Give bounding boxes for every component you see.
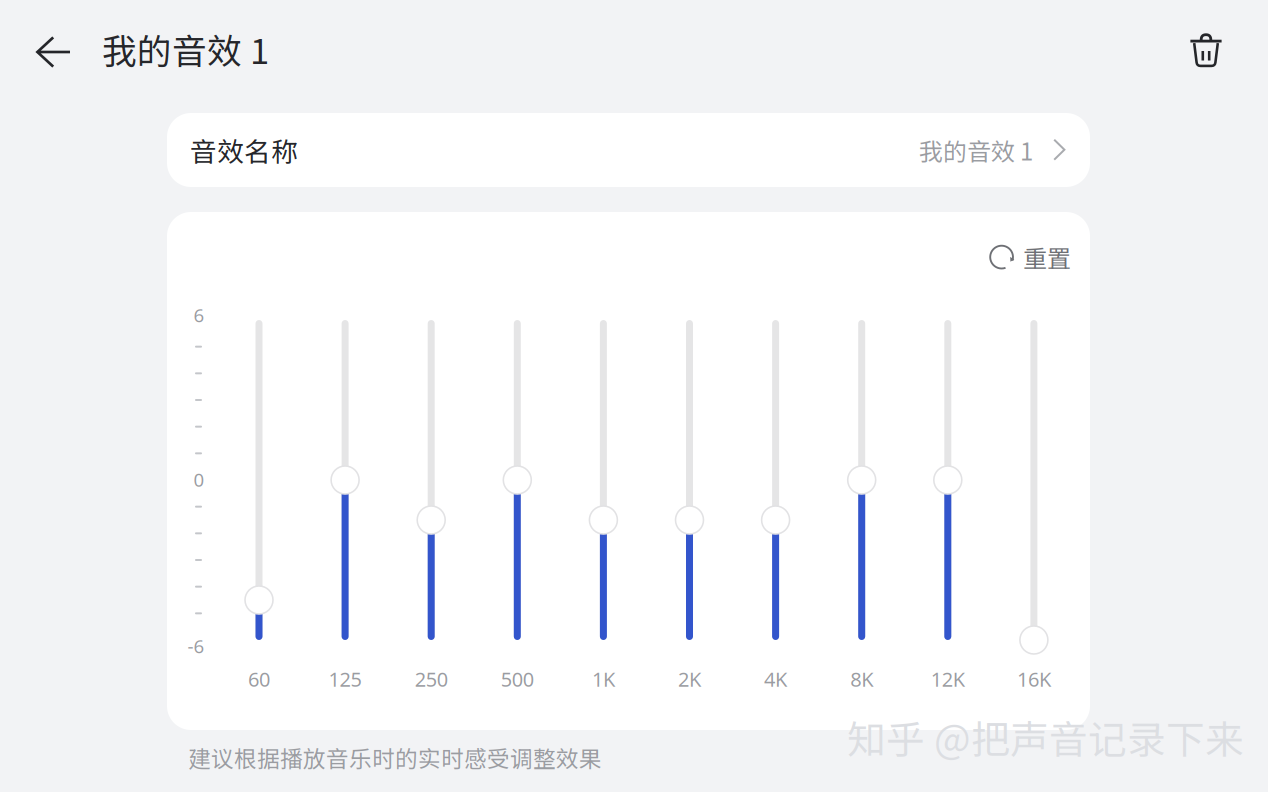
staticText: 0 [193, 467, 204, 492]
staticText: 8K [850, 666, 873, 692]
button[interactable]: 音效名称 [167, 113, 1090, 187]
staticText: 我的音效 1 [919, 133, 1033, 167]
staticText: 2K [678, 666, 701, 692]
staticText: 6 [193, 303, 204, 327]
staticText: 250 [415, 666, 448, 692]
staticText: 重置 [1023, 240, 1071, 274]
staticText: 我的音效 1 [102, 24, 269, 74]
staticText: 1K [592, 666, 615, 692]
staticText: 建议根据播放音乐时的实时感受调整效果 [188, 741, 602, 774]
button[interactable]: 重置 [981, 237, 1079, 277]
staticText: -6 [187, 634, 204, 658]
staticText: 音效名称 [190, 131, 298, 169]
staticText: 500 [501, 666, 534, 692]
staticText: 60 [248, 666, 270, 692]
staticText: 125 [329, 666, 362, 692]
button[interactable]: Back [23, 21, 85, 83]
staticText: 4K [764, 666, 787, 692]
staticText: 12K [931, 666, 965, 692]
button[interactable]: Delete [1175, 19, 1237, 81]
staticText: 知乎 @把声音记录下来 [847, 709, 1244, 765]
staticText: 16K [1017, 666, 1051, 692]
